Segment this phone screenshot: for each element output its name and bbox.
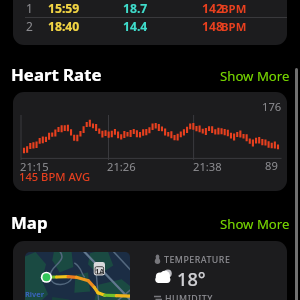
staticText: 89	[265, 158, 278, 173]
staticText: 142	[202, 0, 223, 17]
staticText: 176	[262, 99, 282, 114]
staticText: 18.7	[123, 0, 148, 17]
staticText: BPM	[221, 1, 247, 16]
staticText: 18°	[177, 267, 206, 292]
staticText: Map	[11, 211, 48, 234]
staticText: Heart Rate	[11, 63, 102, 86]
staticText: TEMPERATURE	[164, 254, 231, 266]
staticText: Show More	[220, 215, 290, 233]
staticText: 14.4	[123, 18, 148, 35]
button[interactable]: 2	[13, 18, 287, 35]
button[interactable]: 1A	[13, 241, 287, 300]
staticText: 21:38	[193, 159, 222, 174]
button[interactable]: 1	[13, 0, 287, 17]
staticText: 1A	[95, 266, 105, 276]
button[interactable]: 176	[13, 92, 287, 191]
staticText: 145 BPM AVG	[19, 169, 91, 184]
staticText: 21:15	[20, 159, 49, 174]
staticText: 2	[26, 18, 33, 34]
staticText: River	[25, 289, 44, 299]
staticText: HUMIDITY	[165, 293, 213, 300]
staticText: BPM	[221, 19, 247, 34]
staticText: 1	[26, 0, 33, 16]
staticText: 21:26	[107, 159, 136, 174]
button[interactable]: Show More	[220, 67, 290, 85]
staticText: Show More	[220, 67, 290, 85]
staticText: 15:59	[48, 0, 80, 17]
staticText: 148	[202, 18, 223, 35]
staticText: 18:40	[48, 18, 80, 35]
button[interactable]: Show More	[220, 215, 290, 233]
